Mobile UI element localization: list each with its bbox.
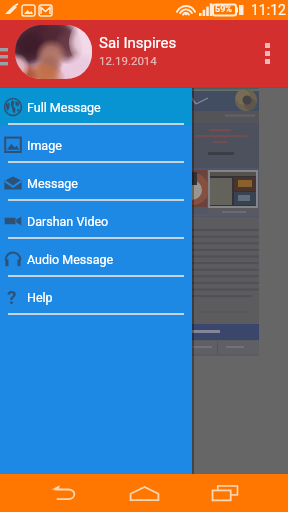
button[interactable]: Home [124,474,164,512]
staticText: Darshan Video [27,214,109,229]
button[interactable]: ? [0,278,192,316]
button[interactable]: Back [44,474,84,512]
button[interactable]: Audio Message [0,240,192,278]
staticText: Image [27,138,62,153]
staticText: 11:12 [251,2,286,18]
staticText: Sai Inspires [99,34,177,52]
button[interactable]: Recent apps [205,474,245,512]
button[interactable]: More options [258,40,278,68]
staticText: 59% [215,4,232,15]
staticText: ? [7,286,17,308]
button[interactable]: Message [0,164,192,202]
staticText: Audio Message [27,252,114,267]
staticText: 12.19.2014 [99,54,157,67]
button[interactable]: Image [0,126,192,164]
staticText: Full Message [27,100,101,115]
staticText: Help [27,290,53,305]
staticText: Message [27,176,78,191]
button[interactable]: Full Message [0,88,192,126]
button[interactable]: Open navigation drawer [0,39,20,69]
button[interactable]: Darshan Video [0,202,192,240]
